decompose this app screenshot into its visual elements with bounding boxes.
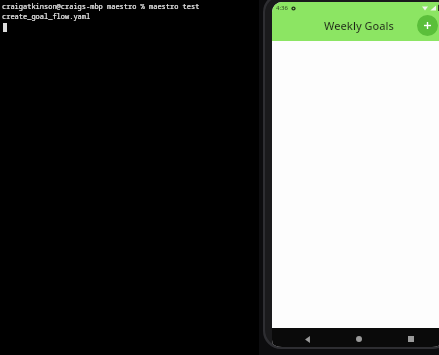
button[interactable]: Recent apps [402, 330, 420, 347]
button[interactable]: Add goal [417, 15, 438, 36]
button[interactable]: Back [298, 330, 316, 347]
button[interactable]: Home [350, 330, 368, 347]
staticText: Weekly Goals [324, 18, 394, 33]
staticText: 4:36 [276, 4, 288, 12]
staticText: craigatkinson@craigs-mbp maestro % maest… [2, 2, 259, 22]
